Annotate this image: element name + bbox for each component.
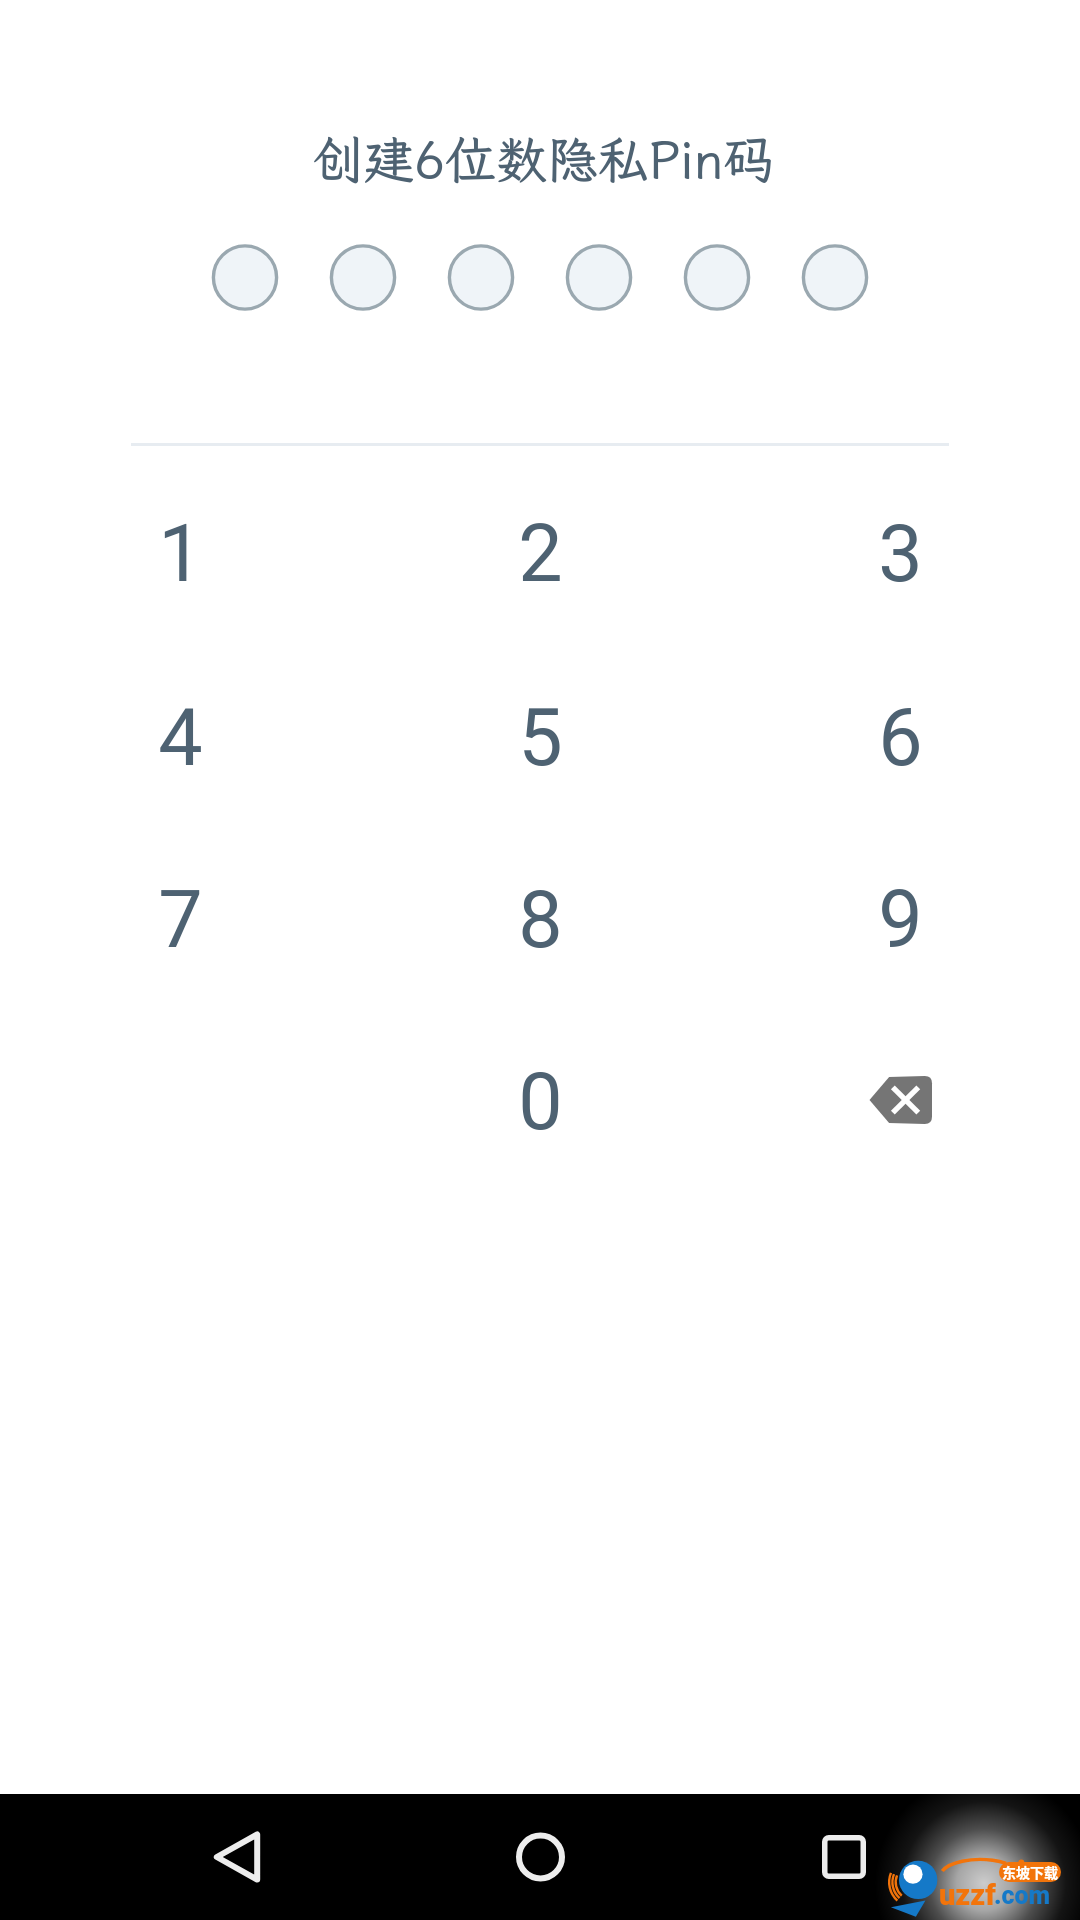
- staticText: 8: [518, 874, 563, 967]
- staticText: 7: [158, 874, 203, 967]
- button[interactable]: Delete last digit: [750, 1014, 1050, 1190]
- staticText: 4: [158, 692, 203, 785]
- staticText: 1: [158, 508, 203, 601]
- button[interactable]: 4: [30, 650, 330, 826]
- staticText: 0: [518, 1056, 563, 1149]
- button[interactable]: 9: [750, 832, 1050, 1008]
- staticText: 5: [518, 692, 563, 785]
- button[interactable]: 0: [390, 1014, 690, 1190]
- staticText: 3: [878, 508, 923, 601]
- button[interactable]: Recent apps: [819, 1829, 869, 1885]
- button[interactable]: 3: [750, 466, 1050, 642]
- staticText: uzzf: [939, 1878, 996, 1912]
- button[interactable]: Back: [212, 1829, 262, 1885]
- button[interactable]: 8: [390, 832, 690, 1008]
- staticText: 东坡下载: [1002, 1862, 1058, 1882]
- button[interactable]: 6: [750, 650, 1050, 826]
- staticText: 6: [878, 692, 923, 785]
- staticText: 创建6位数隐私Pin码: [312, 125, 775, 192]
- button[interactable]: 1: [30, 466, 330, 642]
- staticText: 2: [518, 508, 563, 601]
- button[interactable]: Home: [513, 1829, 568, 1885]
- button[interactable]: 2: [390, 466, 690, 642]
- staticText: .com: [994, 1881, 1051, 1910]
- button[interactable]: 5: [390, 650, 690, 826]
- staticText: 9: [878, 874, 923, 967]
- button[interactable]: 7: [30, 832, 330, 1008]
